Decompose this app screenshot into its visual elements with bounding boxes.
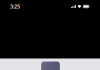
staticText: 3:25 xyxy=(10,3,20,10)
